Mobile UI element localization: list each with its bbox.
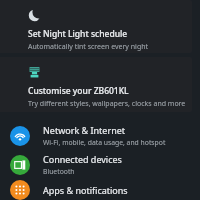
staticText: Network & Internet xyxy=(43,124,126,136)
button[interactable]: Set Night Light schedule xyxy=(0,0,192,53)
staticText: Bluetooth xyxy=(43,167,75,176)
staticText: Customise your ZB601KL xyxy=(28,85,129,97)
staticText: Set Night Light schedule xyxy=(28,28,128,40)
staticText: Wi-Fi, mobile, data usage, and hotspot xyxy=(43,138,166,147)
staticText: Try different styles, wallpapers, clocks… xyxy=(28,99,186,109)
button[interactable]: Connected devices xyxy=(0,150,200,179)
staticText: Apps & notifications xyxy=(43,184,128,196)
button[interactable]: Network & Internet xyxy=(0,121,200,150)
button[interactable]: Apps & notifications xyxy=(0,179,200,200)
staticText: Connected devices xyxy=(43,153,122,165)
button[interactable]: Customise your ZB601KL xyxy=(0,57,192,112)
staticText: Automatically tint screen every night xyxy=(28,42,149,52)
